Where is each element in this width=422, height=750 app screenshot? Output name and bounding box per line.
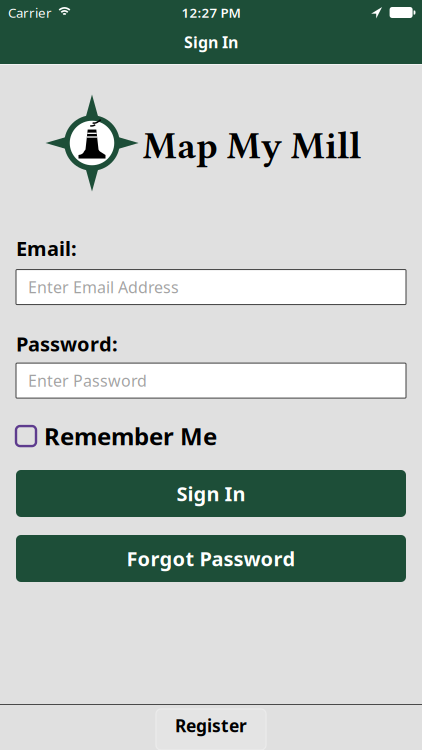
button[interactable]: Register <box>156 709 266 750</box>
staticText: Enter Email Address <box>28 276 179 298</box>
staticText: Map My Mill <box>143 125 361 167</box>
staticText: Enter Password <box>28 370 147 391</box>
staticText: Forgot Password <box>126 545 295 572</box>
staticText: Remember Me <box>44 420 217 452</box>
button[interactable]: Enter Password <box>16 363 406 398</box>
staticText: 12:27 PM <box>181 4 240 21</box>
button[interactable]: Sign In <box>16 470 406 517</box>
button[interactable]: Enter Email Address <box>16 270 406 305</box>
staticText: Sign In <box>176 480 245 507</box>
staticText: Email: <box>16 235 77 262</box>
staticText: Register <box>175 714 247 737</box>
staticText: Carrier <box>8 4 52 21</box>
button[interactable]: Forgot Password <box>16 535 406 582</box>
button[interactable]: Remember Me <box>16 420 217 452</box>
staticText: Password: <box>16 331 118 357</box>
staticText: Sign In <box>184 31 238 53</box>
